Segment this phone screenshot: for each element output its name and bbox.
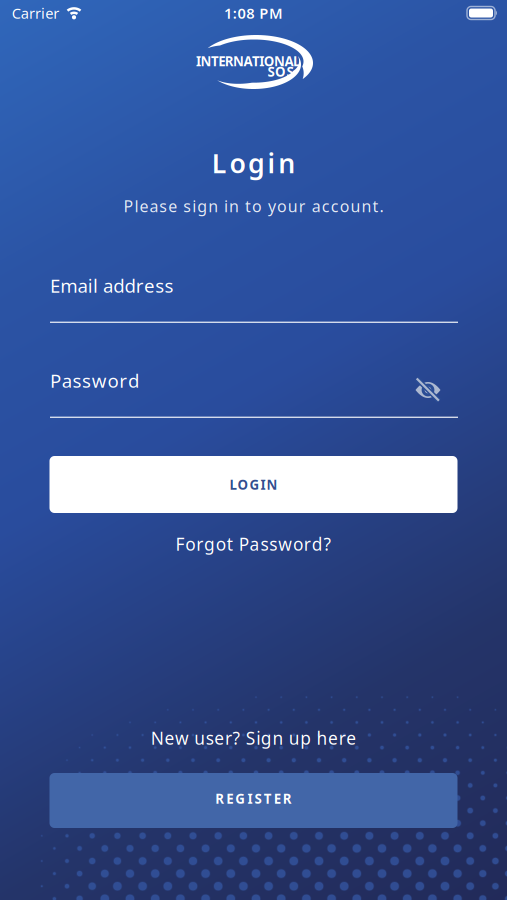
staticText: e — [214, 726, 224, 749]
staticText: 0 — [237, 3, 245, 23]
staticText: O — [264, 52, 275, 70]
staticText: F — [175, 532, 184, 555]
staticText: u — [194, 726, 205, 749]
staticText: 1 — [224, 3, 232, 23]
staticText: l — [93, 273, 98, 298]
staticText: a — [250, 532, 260, 555]
button[interactable]: R — [49, 773, 457, 828]
staticText: d — [113, 273, 124, 298]
staticText: I — [247, 790, 252, 807]
staticText: E — [274, 790, 281, 807]
staticText: L — [293, 52, 300, 70]
staticText: e — [144, 273, 155, 298]
staticText: O — [275, 63, 286, 80]
staticText: c — [322, 195, 330, 217]
staticText: L — [212, 145, 227, 181]
staticText: g — [261, 726, 272, 749]
staticText: P — [259, 3, 268, 23]
staticText: i — [192, 195, 196, 217]
staticText: n — [272, 726, 283, 749]
staticText: s — [72, 368, 81, 393]
staticText: C — [12, 3, 21, 23]
staticText: a — [77, 273, 87, 298]
staticText: r — [119, 368, 127, 393]
staticText: t — [372, 195, 378, 217]
button[interactable] — [414, 377, 441, 402]
staticText: S — [268, 63, 275, 80]
staticText: d — [312, 532, 323, 555]
staticText: h — [316, 726, 327, 749]
staticText: . — [379, 195, 383, 217]
staticText: r — [304, 532, 311, 555]
staticText: w — [175, 726, 189, 749]
button[interactable]: E — [50, 273, 458, 323]
staticText: M — [269, 3, 283, 23]
staticText: E — [50, 273, 60, 298]
staticText: O — [237, 476, 248, 493]
staticText: s — [269, 532, 277, 555]
staticText: n — [208, 195, 218, 217]
staticText: A — [284, 52, 293, 70]
staticText: r — [196, 532, 203, 555]
staticText: s — [155, 273, 164, 298]
staticText: a — [21, 3, 29, 23]
button[interactable]: L — [49, 456, 457, 513]
staticText: T — [211, 52, 219, 70]
staticText: c — [331, 195, 339, 217]
staticText: w — [92, 368, 107, 393]
staticText: a — [312, 195, 321, 217]
staticText: i — [256, 726, 260, 749]
staticText: N — [151, 726, 164, 749]
staticText: R — [283, 790, 292, 807]
staticText: n — [229, 195, 239, 217]
staticText: G — [235, 790, 245, 807]
staticText: S — [255, 790, 262, 807]
staticText: o — [107, 368, 118, 393]
staticText: S — [246, 726, 256, 749]
button[interactable]: F — [175, 532, 332, 555]
staticText: P — [239, 532, 249, 555]
staticText: d — [128, 368, 139, 393]
staticText: P — [50, 368, 61, 393]
staticText: r — [53, 3, 59, 23]
staticText: g — [204, 532, 215, 555]
staticText: s — [260, 532, 268, 555]
staticText: S — [286, 63, 293, 80]
staticText: i — [268, 145, 276, 181]
staticText: y — [268, 195, 276, 217]
staticText: N — [200, 52, 211, 70]
staticText: s — [183, 195, 191, 217]
staticText: N — [233, 52, 244, 70]
staticText: n — [278, 145, 295, 181]
staticText: T — [264, 790, 272, 807]
staticText: e — [346, 726, 356, 749]
staticText: a — [103, 273, 113, 298]
staticText: e — [164, 726, 174, 749]
staticText: o — [277, 195, 287, 217]
staticText: s — [82, 368, 91, 393]
staticText: d — [125, 273, 136, 298]
staticText: l — [134, 195, 138, 217]
staticText: t — [245, 195, 251, 217]
staticText: r — [339, 726, 346, 749]
staticText: u — [289, 726, 300, 749]
staticText: I — [196, 52, 201, 70]
staticText: p — [300, 726, 311, 749]
staticText: o — [229, 145, 245, 181]
staticText: r — [225, 726, 232, 749]
staticText: T — [252, 52, 260, 70]
staticText: N — [274, 52, 285, 70]
button[interactable]: N — [151, 726, 356, 749]
button[interactable]: P — [50, 368, 458, 418]
staticText: r — [136, 273, 144, 298]
staticText: e — [328, 726, 338, 749]
staticText: N — [266, 476, 277, 493]
staticText: a — [62, 368, 72, 393]
staticText: R — [225, 52, 234, 70]
staticText: I — [260, 476, 265, 493]
staticText: o — [340, 195, 350, 217]
staticText: o — [252, 195, 262, 217]
staticText: L — [229, 476, 236, 493]
staticText: P — [124, 195, 134, 217]
staticText: r — [299, 195, 306, 217]
